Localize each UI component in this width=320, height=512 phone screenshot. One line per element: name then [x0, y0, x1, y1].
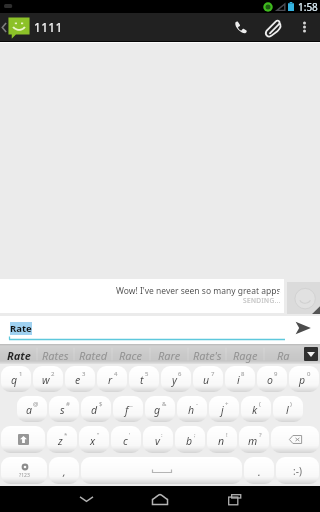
button[interactable]: f	[113, 396, 143, 422]
button[interactable]: Recent apps	[202, 486, 266, 512]
button[interactable]: Home	[128, 486, 192, 512]
button[interactable]: Race	[112, 344, 150, 364]
staticText: 3	[82, 370, 86, 378]
staticText: 2	[51, 370, 55, 378]
button[interactable]: Rates	[37, 344, 74, 364]
staticText: $	[99, 400, 103, 408]
button[interactable]	[81, 457, 242, 484]
staticText: r	[108, 373, 113, 387]
button[interactable]: r	[97, 366, 127, 392]
staticText: 4	[114, 370, 118, 378]
staticText: *	[64, 431, 68, 439]
staticText: Rage	[233, 348, 258, 363]
staticText: ?	[259, 431, 262, 439]
button[interactable]: Attach	[256, 13, 290, 41]
staticText: 1	[19, 370, 23, 378]
staticText: j	[221, 403, 224, 417]
button[interactable]: ?123	[1, 457, 47, 484]
button[interactable]: n	[207, 426, 237, 453]
staticText: m	[248, 434, 258, 448]
staticText: 6	[178, 370, 182, 378]
button[interactable]: y	[161, 366, 191, 392]
button[interactable]: :-)	[276, 457, 319, 484]
staticText: 0	[307, 370, 311, 378]
staticText: d	[91, 403, 98, 417]
button[interactable]: Wow! I've never seen so many great apps	[0, 279, 284, 313]
button[interactable]: b	[175, 426, 205, 453]
button[interactable]: Rate	[0, 316, 286, 340]
button[interactable]: Rate's	[188, 344, 226, 364]
button[interactable]: c	[111, 426, 141, 453]
staticText: b	[186, 434, 193, 448]
button[interactable]: g	[145, 396, 175, 422]
button[interactable]: Call	[224, 13, 256, 41]
button[interactable]: .	[244, 457, 274, 484]
button[interactable]: Rage	[226, 344, 264, 364]
button[interactable]: Rated	[74, 344, 112, 364]
button[interactable]: w	[33, 366, 63, 392]
button[interactable]: e	[65, 366, 95, 392]
button[interactable]: p	[289, 366, 319, 392]
staticText: 1111	[34, 19, 63, 35]
button[interactable]: i	[225, 366, 255, 392]
staticText: i	[237, 373, 240, 387]
staticText: f	[125, 403, 129, 417]
staticText: g	[154, 403, 161, 417]
staticText: Rate	[10, 322, 32, 335]
staticText: .	[258, 465, 261, 479]
button[interactable]: m	[239, 426, 269, 453]
button[interactable]: h	[177, 396, 207, 422]
staticText: h	[188, 403, 195, 417]
staticText: #	[66, 400, 70, 408]
staticText: 8	[241, 370, 245, 378]
staticText: :-)	[293, 464, 302, 478]
button[interactable]: t	[129, 366, 159, 392]
button[interactable]: v	[143, 426, 173, 453]
staticText: SENDING...	[243, 296, 281, 305]
staticText: 1:58	[298, 0, 318, 13]
button[interactable]: Back	[0, 13, 30, 41]
button[interactable]: o	[257, 366, 287, 392]
button[interactable]: Rate	[0, 344, 37, 364]
staticText: ?123	[19, 472, 30, 479]
button[interactable]: Send	[286, 316, 320, 340]
button[interactable]: More suggestions	[302, 344, 320, 364]
staticText: y	[172, 373, 177, 387]
staticText: q	[11, 373, 18, 387]
staticText: 9	[274, 370, 278, 378]
staticText: -	[196, 400, 198, 408]
button[interactable]: k	[241, 396, 271, 422]
button[interactable]: d	[81, 396, 111, 422]
staticText: x	[90, 434, 96, 448]
staticText: _	[130, 400, 133, 408]
staticText: +	[225, 400, 229, 408]
button[interactable]: ,	[49, 457, 79, 484]
button[interactable]: j	[209, 396, 239, 422]
button[interactable]: z	[47, 426, 77, 453]
staticText: v	[155, 434, 160, 448]
button[interactable]: Rare	[150, 344, 188, 364]
staticText: :	[161, 431, 163, 439]
button[interactable]: x	[79, 426, 109, 453]
staticText: &	[162, 400, 167, 408]
button[interactable]: Hide keyboard	[54, 486, 118, 512]
staticText: a	[26, 403, 32, 417]
button[interactable]: a	[17, 396, 47, 422]
button[interactable]: s	[49, 396, 79, 422]
staticText: '	[129, 431, 131, 439]
staticText: Rates	[42, 348, 69, 363]
button[interactable]: l	[273, 396, 303, 422]
staticText: Ra	[277, 348, 290, 363]
button[interactable]: More options	[290, 13, 318, 41]
button[interactable]	[1, 426, 45, 453]
staticText: k	[252, 403, 258, 417]
staticText: z	[58, 434, 63, 448]
staticText: o	[267, 373, 273, 387]
button[interactable]: Ra	[264, 344, 302, 364]
staticText: u	[203, 373, 210, 387]
button[interactable]	[271, 426, 319, 453]
staticText: (	[259, 400, 261, 408]
staticText: Wow! I've never seen so many great apps	[116, 285, 281, 297]
button[interactable]: u	[193, 366, 223, 392]
button[interactable]: q	[1, 366, 31, 392]
